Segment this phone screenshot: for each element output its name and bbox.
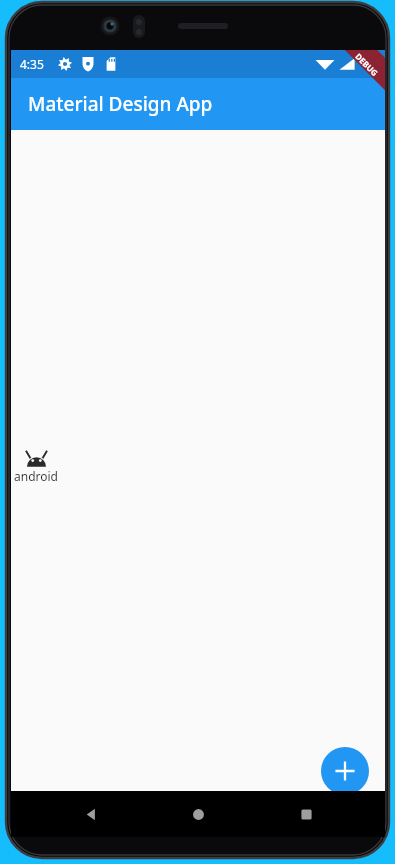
staticText: 4:35 — [20, 56, 44, 72]
staticText: Material Design App — [28, 91, 213, 117]
staticText: DEBUG — [353, 51, 381, 78]
button[interactable]: Recents — [278, 793, 334, 835]
button[interactable]: Home — [170, 793, 226, 835]
button[interactable]: Add — [321, 747, 369, 795]
staticText: android — [14, 468, 58, 484]
button[interactable]: android — [12, 448, 60, 486]
button[interactable]: Back — [63, 793, 119, 835]
